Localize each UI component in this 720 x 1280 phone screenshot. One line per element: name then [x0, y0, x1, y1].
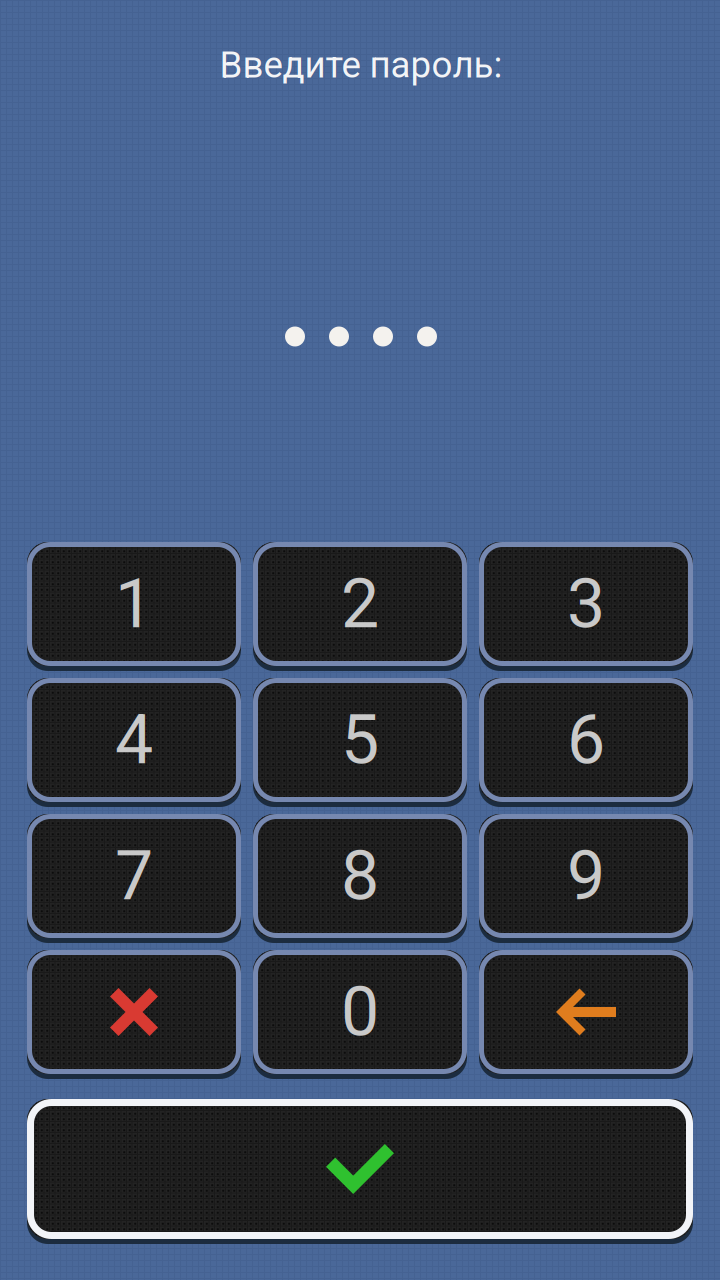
button[interactable]: 3 [479, 542, 693, 666]
staticText: 1 [115, 564, 153, 644]
staticText: 6 [567, 700, 605, 780]
staticText: 8 [341, 836, 379, 916]
button[interactable]: 8 [253, 814, 467, 938]
button[interactable]: 6 [479, 678, 693, 802]
button[interactable]: 5 [253, 678, 467, 802]
button[interactable]: Clear [27, 950, 241, 1074]
staticText: 3 [567, 564, 605, 644]
button[interactable]: 1 [27, 542, 241, 666]
staticText: Введите пароль: [219, 43, 502, 86]
staticText: 5 [341, 700, 379, 780]
button[interactable]: 2 [253, 542, 467, 666]
button[interactable]: 9 [479, 814, 693, 938]
staticText: 2 [341, 564, 379, 644]
staticText: 7 [115, 836, 153, 916]
button[interactable]: Backspace [479, 950, 693, 1074]
button[interactable]: 0 [253, 950, 467, 1074]
staticText: 4 [115, 700, 153, 780]
staticText: 9 [567, 836, 605, 916]
button[interactable]: 4 [27, 678, 241, 802]
button[interactable]: 7 [27, 814, 241, 938]
button[interactable]: OK [27, 1099, 693, 1239]
staticText: 0 [341, 972, 379, 1052]
